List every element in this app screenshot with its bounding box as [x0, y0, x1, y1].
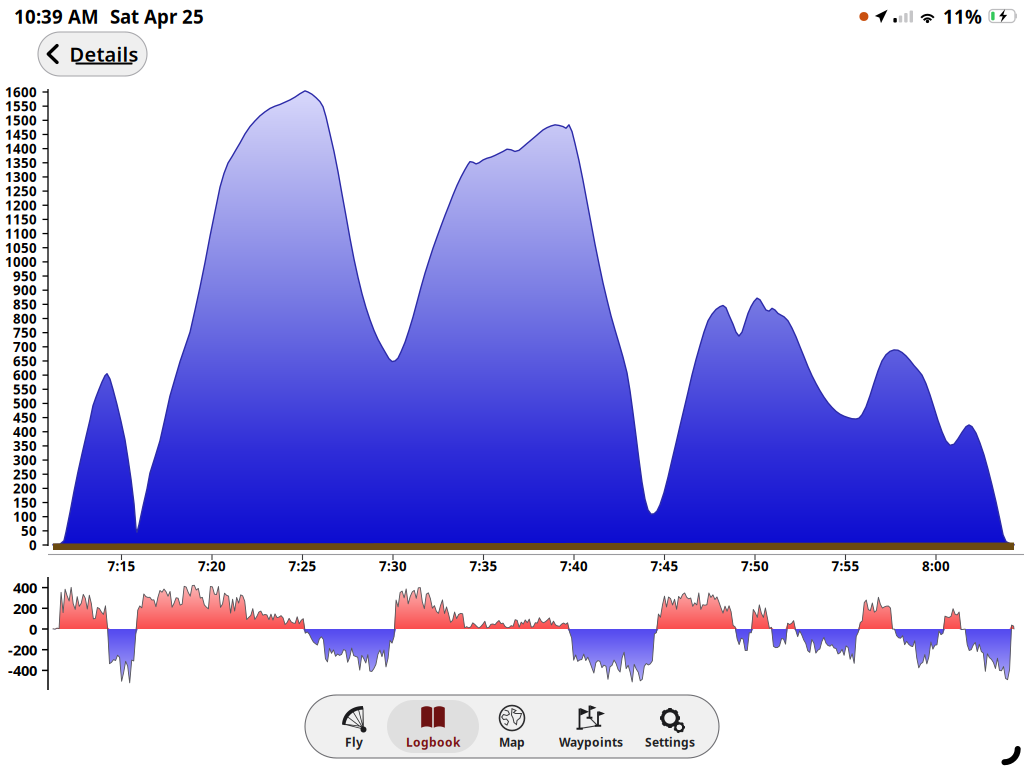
- staticText: 1500: [5, 111, 37, 129]
- staticText: 7:20: [198, 557, 226, 575]
- staticText: 7:35: [469, 557, 497, 575]
- staticText: Waypoints: [559, 734, 623, 750]
- staticText: 400: [13, 423, 37, 441]
- staticText: 7:45: [650, 557, 678, 575]
- staticText: 8:00: [922, 557, 950, 575]
- button[interactable]: Details: [38, 32, 147, 76]
- button[interactable]: Waypoints: [551, 695, 630, 758]
- staticText: 950: [13, 267, 37, 285]
- staticText: 1200: [5, 196, 37, 214]
- staticText: 1100: [5, 225, 37, 242]
- staticText: 1050: [5, 239, 37, 257]
- staticText: 700: [13, 338, 37, 356]
- staticText: -200: [8, 640, 37, 659]
- staticText: 0: [29, 619, 37, 639]
- staticText: 1550: [5, 97, 37, 115]
- staticText: 1150: [5, 211, 37, 228]
- staticText: 200: [13, 599, 37, 618]
- staticText: 200: [13, 479, 37, 497]
- staticText: -400: [8, 661, 37, 680]
- staticText: 100: [13, 508, 37, 525]
- staticText: 1300: [5, 168, 37, 186]
- staticText: Details: [69, 41, 138, 67]
- staticText: 400: [13, 578, 37, 597]
- staticText: 1250: [5, 182, 37, 200]
- staticText: 500: [13, 395, 37, 412]
- staticText: 7:25: [288, 557, 316, 575]
- staticText: 7:55: [831, 557, 859, 575]
- staticText: 650: [13, 352, 37, 370]
- staticText: 1400: [5, 140, 37, 157]
- button[interactable]: Logbook: [393, 695, 472, 758]
- staticText: 150: [13, 494, 37, 511]
- button[interactable]: Fly: [314, 695, 393, 758]
- staticText: 0: [29, 536, 37, 554]
- staticText: 250: [13, 465, 37, 483]
- staticText: 1000: [5, 253, 37, 271]
- staticText: 300: [13, 451, 37, 469]
- staticText: 600: [13, 366, 37, 384]
- staticText: 850: [13, 295, 37, 313]
- staticText: 7:50: [741, 557, 769, 575]
- button[interactable]: Settings: [630, 695, 709, 758]
- staticText: 350: [13, 437, 37, 455]
- staticText: 550: [13, 380, 37, 398]
- staticText: Fly: [345, 734, 363, 750]
- staticText: 1450: [5, 126, 37, 143]
- staticText: Sat Apr 25: [110, 4, 204, 29]
- staticText: Logbook: [406, 734, 460, 750]
- staticText: 11%: [943, 4, 982, 29]
- staticText: Map: [499, 734, 525, 750]
- staticText: Settings: [645, 734, 695, 750]
- button[interactable]: Map: [472, 695, 551, 758]
- staticText: 7:15: [107, 557, 135, 575]
- staticText: 750: [13, 324, 37, 341]
- staticText: 450: [13, 409, 37, 426]
- staticText: 900: [13, 281, 37, 299]
- staticText: 50: [21, 522, 37, 540]
- staticText: 1600: [5, 83, 37, 101]
- staticText: 800: [13, 310, 37, 327]
- staticText: 10:39 AM: [14, 4, 99, 29]
- staticText: 7:40: [560, 557, 588, 575]
- staticText: 1350: [5, 154, 37, 172]
- staticText: 7:30: [379, 557, 407, 575]
